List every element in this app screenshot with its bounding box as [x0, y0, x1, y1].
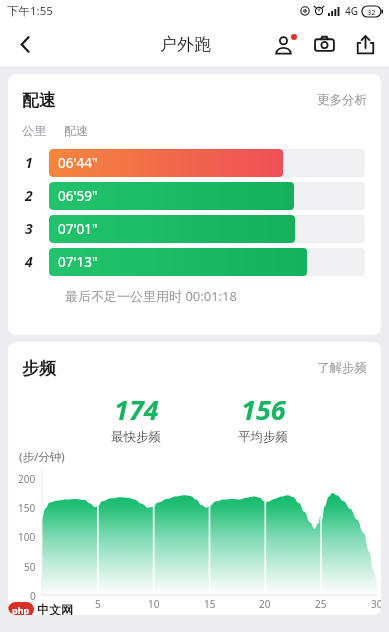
button[interactable]: Map route — [263, 24, 304, 65]
staticText: 100 — [18, 530, 36, 544]
staticText: 步频 — [22, 358, 56, 379]
staticText: 5 — [95, 597, 101, 611]
staticText: 200 — [18, 472, 36, 486]
staticText: 156 — [241, 391, 286, 428]
staticText: 1 — [25, 153, 33, 172]
staticText: 平均步频 — [238, 429, 288, 445]
staticText: 公里 — [22, 123, 46, 138]
staticText: 25 — [315, 597, 327, 611]
staticText: 更多分析 — [317, 92, 367, 108]
staticText: 4 — [25, 252, 33, 271]
button[interactable]: Share — [345, 24, 386, 65]
staticText: 07'01" — [58, 220, 98, 238]
staticText: php — [12, 604, 30, 615]
staticText: 3 — [25, 219, 33, 238]
staticText: 了解步频 — [317, 360, 367, 376]
staticText: 07'13" — [58, 253, 98, 271]
button[interactable]: 了解步频 — [313, 356, 371, 380]
staticText: 150 — [18, 501, 36, 515]
staticText: 中文网 — [37, 602, 73, 615]
staticText: 下午1:55 — [7, 3, 53, 19]
staticText: 15 — [204, 597, 216, 611]
staticText: 06'59" — [58, 187, 98, 205]
staticText: 2 — [25, 186, 33, 205]
staticText: 最后不足一公里用时 00:01:18 — [65, 287, 237, 305]
staticText: 配速 — [64, 123, 88, 138]
staticText: 32 — [367, 7, 376, 17]
staticText: 10 — [148, 597, 160, 611]
staticText: 户外跑 — [160, 34, 211, 55]
button[interactable]: Back — [6, 25, 44, 63]
staticText: 174 — [114, 391, 159, 428]
staticText: 0 — [30, 589, 36, 603]
button[interactable]: 更多分析 — [313, 88, 371, 112]
staticText: 06'44" — [58, 154, 98, 172]
staticText: 20 — [259, 597, 271, 611]
staticText: 4G — [345, 4, 358, 18]
button[interactable]: Camera — [304, 24, 345, 65]
staticText: 30 — [371, 597, 381, 611]
staticText: 50 — [24, 560, 36, 574]
staticText: (步/分钟) — [19, 449, 65, 465]
staticText: 配速 — [22, 90, 56, 111]
staticText: 最快步频 — [111, 429, 161, 445]
